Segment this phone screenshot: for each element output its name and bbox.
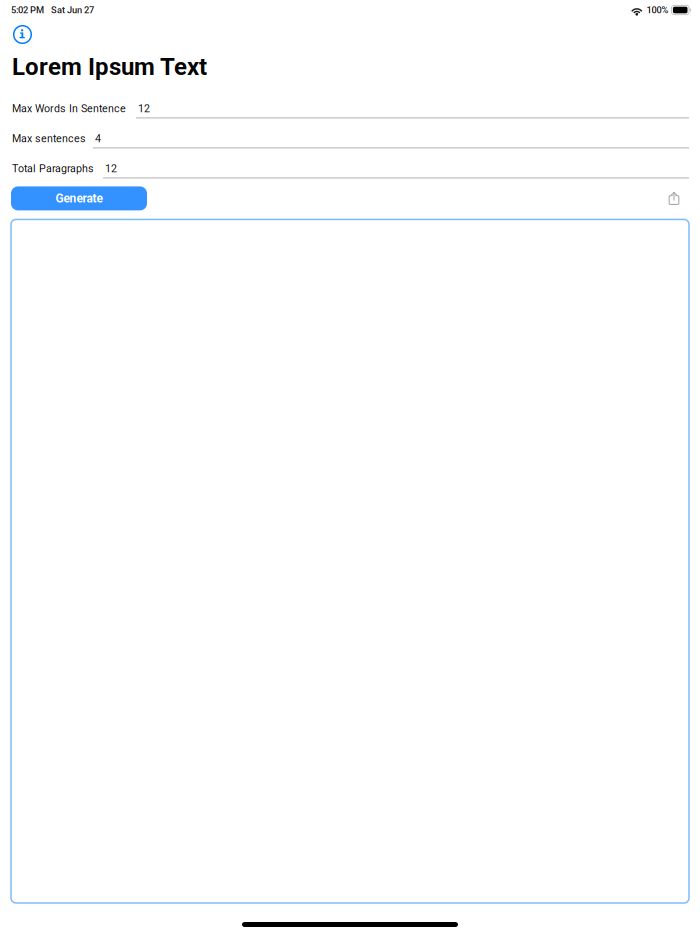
button[interactable]: Info xyxy=(11,23,34,46)
button[interactable]: Share xyxy=(663,185,685,211)
staticText: Lorem Ipsum Text xyxy=(12,53,207,80)
staticText: 12 xyxy=(138,102,150,115)
staticText: Max Words In Sentence xyxy=(12,102,126,115)
staticText: 4 xyxy=(95,132,101,145)
staticText: Generate xyxy=(55,192,102,205)
staticText: 5:02 PM xyxy=(11,5,44,15)
button[interactable]: Generate xyxy=(11,186,147,210)
staticText: Total Paragraphs xyxy=(12,162,94,175)
staticText: 100% xyxy=(646,5,668,15)
staticText: Sat Jun 27 xyxy=(51,5,94,15)
staticText: 12 xyxy=(105,162,117,175)
staticText: Max sentences xyxy=(12,132,86,145)
